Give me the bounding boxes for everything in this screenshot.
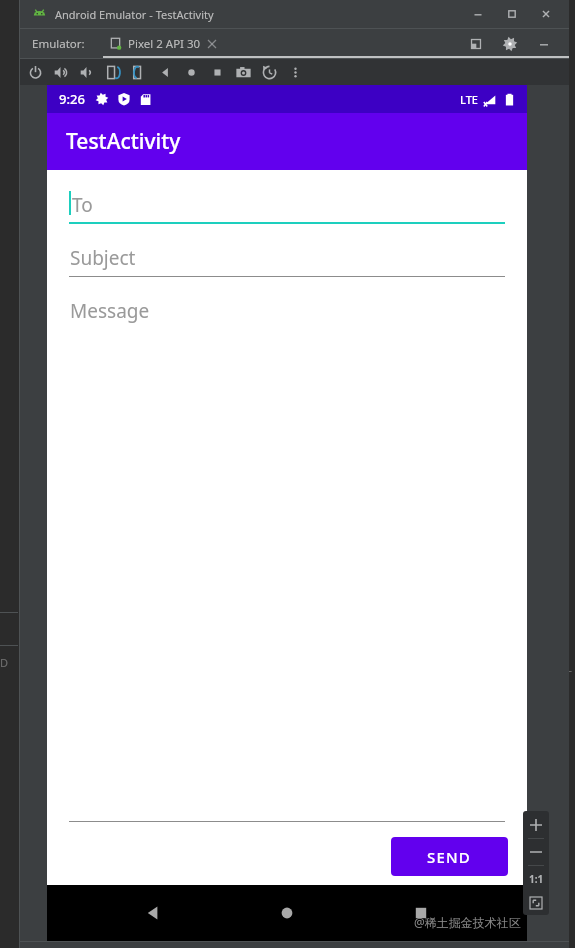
staticText: SEND (427, 847, 472, 867)
button[interactable]: Zoom in (523, 811, 549, 838)
staticText: @稀土掘金技术社区 (414, 914, 521, 930)
button[interactable]: Minimize (461, 2, 495, 26)
button[interactable]: Screenshot (230, 59, 256, 85)
button[interactable]: More (282, 59, 308, 85)
button[interactable]: Split window (459, 32, 493, 56)
button[interactable]: 1:1 (523, 866, 549, 891)
button[interactable]: Volume up (48, 59, 74, 85)
button[interactable]: Recent apps (393, 885, 449, 941)
button[interactable]: Pixel 2 API 30 (103, 29, 569, 58)
button[interactable]: Overview (204, 59, 230, 85)
button[interactable]: Fit to screen (523, 891, 549, 915)
button[interactable]: Home (178, 59, 204, 85)
button[interactable]: Back (152, 59, 178, 85)
staticText: To (72, 192, 93, 218)
button[interactable]: SEND (391, 837, 508, 876)
button[interactable]: Subject (69, 241, 505, 277)
staticText: Message (70, 298, 150, 324)
button[interactable]: History (256, 59, 282, 85)
staticText: TestActivity (66, 127, 181, 156)
button[interactable]: Rotate right (126, 59, 152, 85)
button[interactable]: Power (22, 59, 48, 85)
staticText: Android Emulator - TestActivity (55, 7, 214, 22)
staticText: Emulator: (32, 36, 85, 52)
button[interactable]: Settings (493, 32, 527, 56)
button[interactable]: Rotate left (100, 59, 126, 85)
staticText: Pixel 2 API 30 (128, 36, 201, 52)
button[interactable]: Hide (527, 32, 561, 56)
button[interactable]: Maximize (495, 2, 529, 26)
button[interactable]: Zoom out (523, 839, 549, 865)
staticText: LTE (460, 92, 478, 107)
staticText: 9:26 (59, 90, 85, 108)
button[interactable]: Back (125, 885, 181, 941)
staticText: Subject (70, 245, 136, 271)
staticText: 1:1 (529, 872, 544, 886)
button[interactable]: Home (259, 885, 315, 941)
button[interactable]: Message (69, 294, 505, 822)
button[interactable]: To (69, 188, 505, 224)
staticText: L (566, 660, 572, 675)
staticText: D (0, 655, 9, 670)
button[interactable]: Volume down (74, 59, 100, 85)
button[interactable]: Close (529, 2, 563, 26)
